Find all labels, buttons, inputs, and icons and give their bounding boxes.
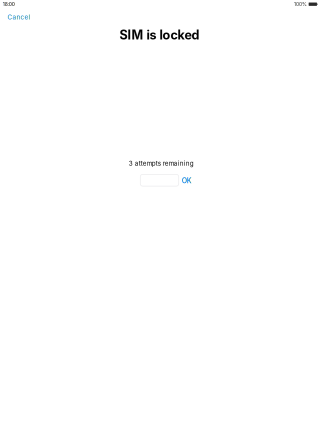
secureTextField[interactable] — [140, 174, 179, 186]
staticText: 100% — [294, 1, 307, 7]
staticText: 3 attempts remaining — [129, 160, 194, 167]
staticText: 18:00 — [3, 1, 15, 7]
staticText: Cancel — [7, 13, 30, 21]
staticText: SIM is locked — [120, 27, 200, 43]
button[interactable]: OK — [179, 175, 194, 187]
button[interactable]: Cancel — [3, 10, 34, 25]
staticText: OK — [182, 177, 192, 185]
